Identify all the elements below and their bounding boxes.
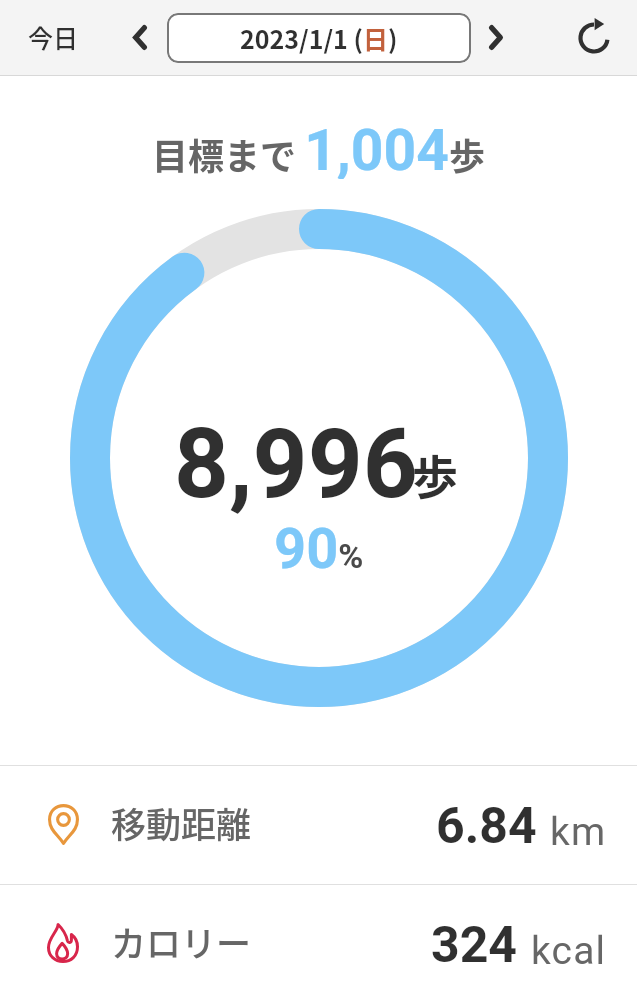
staticText: カロリー: [111, 916, 252, 967]
staticText: 目標まで 1,004歩: [152, 117, 485, 179]
staticText: 移動距離: [111, 797, 252, 848]
staticText: 8,996: [174, 408, 418, 521]
staticText: 90%: [274, 516, 364, 574]
button[interactable]: カロリー: [0, 885, 637, 1000]
button[interactable]: 移動距離: [0, 766, 637, 884]
staticText: 歩: [412, 441, 458, 508]
staticText: 2023/1/1 (日): [240, 20, 398, 56]
button[interactable]: 2023/1/1 (日): [167, 13, 471, 63]
button[interactable]: Refresh: [566, 10, 622, 66]
staticText: 6.84: [436, 797, 537, 856]
staticText: 今日: [28, 19, 79, 55]
button[interactable]: Next day: [474, 15, 518, 59]
staticText: km: [550, 809, 607, 855]
staticText: kcal: [531, 928, 607, 974]
staticText: 324: [431, 916, 518, 975]
button[interactable]: Previous day: [118, 15, 162, 59]
button[interactable]: 今日: [16, 10, 91, 64]
